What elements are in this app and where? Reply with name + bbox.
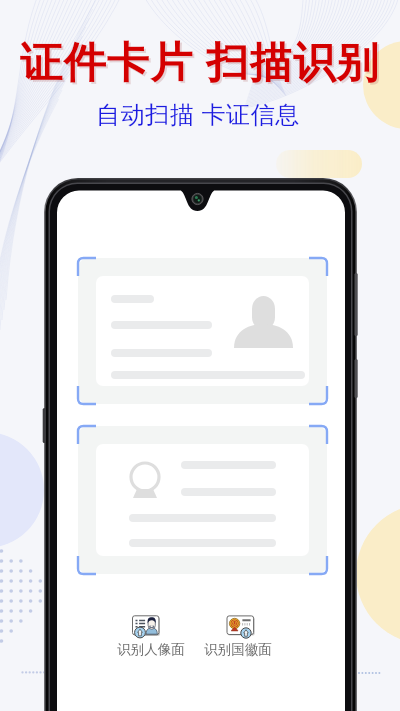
button[interactable]: 识别人像面 (116, 606, 186, 656)
staticText: 识别人像面 (116, 641, 186, 661)
staticText: 识别国徽面 (203, 641, 273, 661)
button[interactable]: 识别国徽面 (203, 606, 273, 656)
staticText: 证件卡片 扫描识别 (0, 32, 400, 711)
staticText: 证件卡片 扫描识别 (2, 34, 400, 711)
staticText: 自动扫描 卡证信息 (0, 97, 398, 711)
